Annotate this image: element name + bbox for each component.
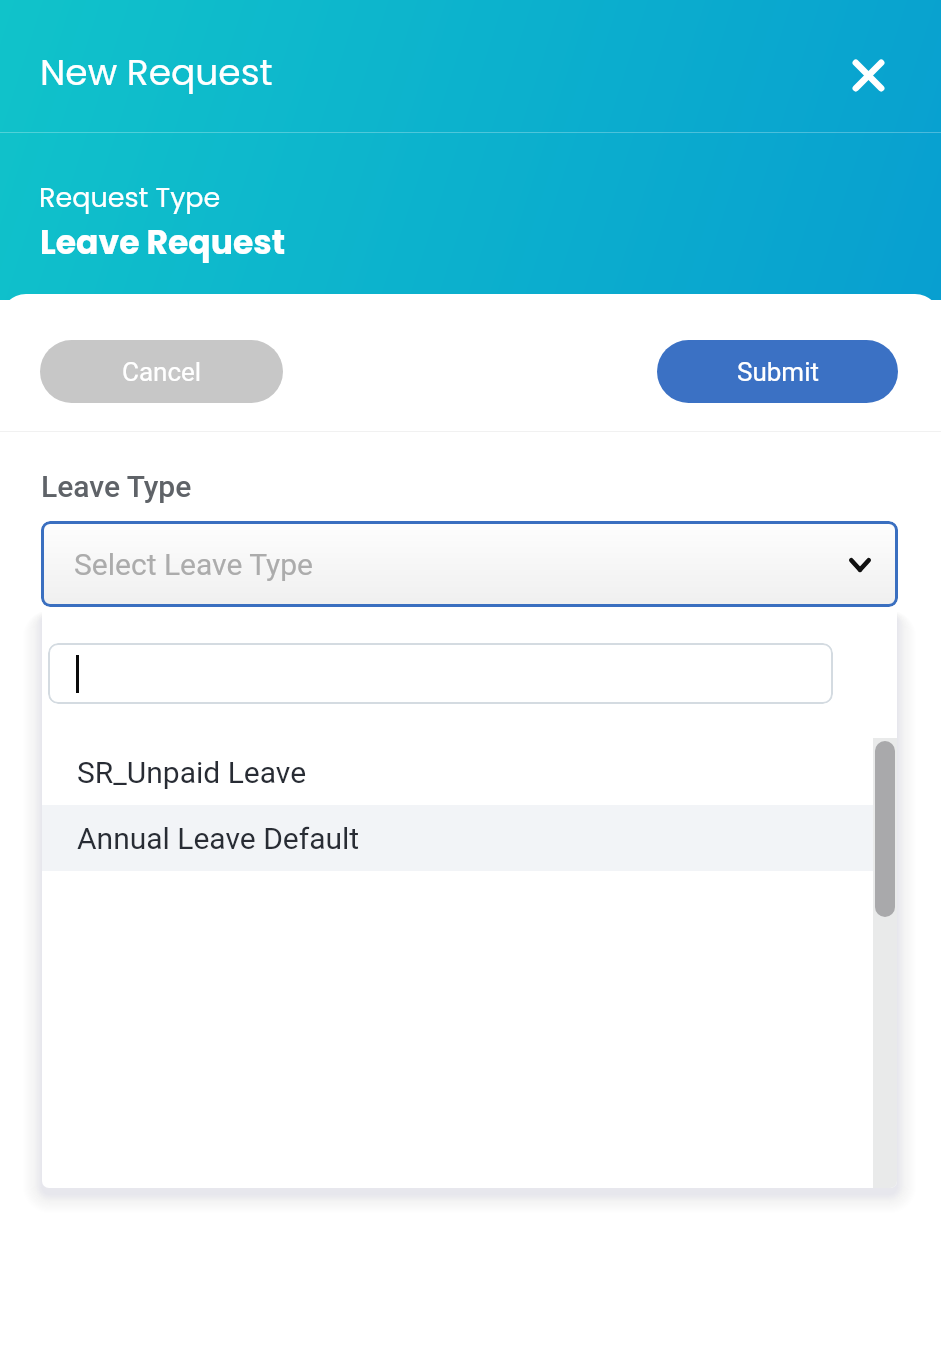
- button[interactable]: Select Leave Type: [41, 521, 898, 607]
- button[interactable]: Close: [838, 45, 898, 105]
- staticText: Leave Type: [41, 469, 192, 504]
- staticText: Leave Request: [40, 219, 286, 265]
- button[interactable]: Cancel: [40, 340, 283, 403]
- button[interactable]: [48, 643, 833, 704]
- button[interactable]: SR_Unpaid Leave: [42, 739, 897, 805]
- staticText: Select Leave Type: [74, 547, 313, 582]
- staticText: SR_Unpaid Leave: [77, 755, 307, 790]
- staticText: New Request: [40, 47, 273, 97]
- button[interactable]: Annual Leave Default: [42, 805, 897, 871]
- staticText: Annual Leave Default: [77, 821, 360, 856]
- staticText: Cancel: [122, 357, 202, 387]
- button[interactable]: Submit: [657, 340, 898, 403]
- staticText: Request Type: [39, 179, 221, 217]
- staticText: Submit: [737, 357, 819, 387]
